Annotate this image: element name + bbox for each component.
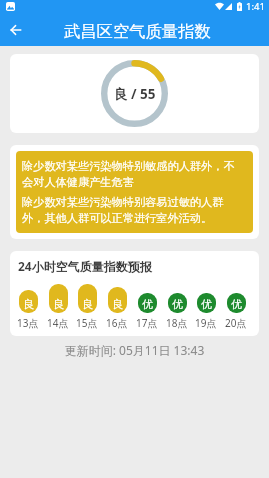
staticText: 优: [172, 297, 183, 311]
staticText: 良: [82, 297, 93, 311]
staticText: 良 / 55: [114, 85, 156, 103]
staticText: 武昌区空气质量指数: [64, 21, 211, 42]
staticText: 14点: [47, 316, 69, 330]
staticText: 优: [142, 297, 153, 311]
staticText: 良: [53, 297, 64, 311]
staticText: 优: [231, 297, 242, 311]
staticText: 优: [201, 297, 212, 311]
staticText: 更新时间: 05月11日 13:43: [0, 342, 269, 358]
staticText: 良: [23, 297, 34, 311]
staticText: 良: [112, 297, 123, 311]
staticText: 13点: [17, 316, 39, 330]
staticText: 18点: [166, 316, 188, 330]
button[interactable]: Back: [4, 18, 28, 42]
staticText: 17点: [136, 316, 158, 330]
staticText: 15点: [76, 316, 98, 330]
staticText: 19点: [195, 316, 217, 330]
staticText: 1:41: [246, 0, 265, 13]
staticText: 16点: [106, 316, 128, 330]
staticText: 除少数对某些污染物特别敏感的人群外，不 会对人体健康产生危害: [22, 159, 235, 189]
staticText: 20点: [225, 316, 247, 330]
staticText: 除少数对某些污染物特别容易过敏的人群 外，其他人群可以正常进行室外活动。: [22, 195, 224, 225]
staticText: 24小时空气质量指数预报: [18, 258, 152, 274]
